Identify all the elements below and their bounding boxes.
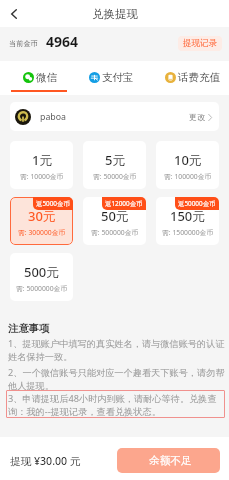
staticText: 需: 100000金币 — [164, 172, 212, 181]
button[interactable]: 150元 — [156, 197, 219, 245]
staticText: 需: 500000金币 — [91, 228, 139, 237]
staticText: 返50000金币 — [178, 199, 216, 208]
button[interactable]: 余额不足 — [117, 448, 220, 473]
staticText: 500元 — [24, 263, 60, 281]
button[interactable]: 10元 — [156, 141, 219, 189]
staticText: ¥30.00 元 — [34, 454, 81, 468]
staticText: paboa — [40, 111, 67, 123]
button[interactable]: 5元 — [83, 141, 146, 189]
button[interactable]: 30元 — [10, 197, 73, 245]
staticText: 提现记录 — [183, 38, 217, 49]
button[interactable]: 微信 — [23, 66, 57, 88]
staticText: 50元 — [101, 207, 129, 225]
staticText: 1、提现账户中填写的真实姓名，请与微信账号的认证姓名保持一致。 — [8, 337, 227, 363]
staticText: 10元 — [174, 151, 202, 169]
button[interactable]: 50元 — [83, 197, 146, 245]
staticText: 需: 50000金币 — [93, 172, 137, 181]
staticText: 2、一个微信账号只能对应一个趣看天下账号，请勿帮他人提现。 — [8, 366, 227, 392]
staticText: 兑换提现 — [92, 7, 138, 21]
button[interactable]: 支付宝 — [89, 66, 134, 88]
staticText: 1元 — [32, 151, 53, 169]
button[interactable]: 500元 — [10, 253, 73, 301]
staticText: 话费充值 — [178, 71, 220, 84]
button[interactable]: Back — [0, 0, 27, 27]
staticText: 5元 — [105, 151, 126, 169]
staticText: 返12000金币 — [105, 199, 143, 208]
button[interactable]: paboa — [10, 102, 219, 131]
staticText: 当前金币 — [9, 39, 38, 48]
staticText: 支付宝 — [102, 71, 134, 84]
staticText: 提现 — [10, 454, 34, 468]
staticText: 需: 1500000金币 — [162, 228, 214, 237]
staticText: 更改 — [189, 112, 205, 122]
staticText: 4964 — [46, 32, 79, 51]
staticText: 150元 — [170, 207, 206, 225]
staticText: 返5000金币 — [36, 199, 70, 208]
button[interactable]: 话费充值 — [165, 66, 220, 88]
staticText: 需: 5000000金币 — [16, 284, 68, 293]
staticText: 3、申请提现后48小时内到账，请耐心等待。兑换查询：我的--提现记录，查看兑换状… — [8, 392, 224, 418]
staticText: 30元 — [28, 207, 56, 225]
staticText: 需: 300000金币 — [18, 228, 66, 237]
button[interactable]: 提现记录 — [178, 36, 222, 51]
staticText: 需: 10000金币 — [20, 172, 64, 181]
button[interactable]: 1元 — [10, 141, 73, 189]
staticText: 余额不足 — [149, 454, 192, 467]
staticText: 注意事项 — [8, 322, 50, 335]
staticText: 微信 — [36, 71, 57, 84]
